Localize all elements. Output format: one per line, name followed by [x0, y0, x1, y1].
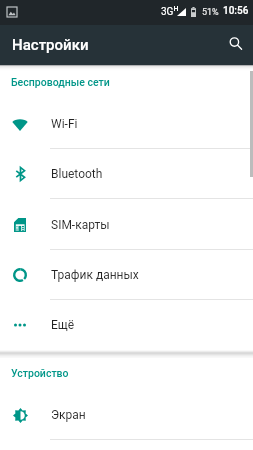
staticText: Ещё — [51, 318, 75, 332]
staticText: SIM-карты — [51, 218, 110, 232]
button[interactable]: Search — [213, 25, 253, 65]
staticText: Устройство — [11, 367, 69, 379]
staticText: Экран — [51, 408, 86, 422]
button[interactable]: Трафик данных — [0, 250, 253, 300]
staticText: 3G — [161, 6, 174, 18]
staticText: Bluetooth — [51, 167, 103, 181]
staticText: Беспроводные сети — [11, 76, 110, 88]
button[interactable]: Wi-Fi — [0, 99, 253, 149]
button[interactable]: SIM-карты — [0, 199, 253, 250]
staticText: Трафик данных — [51, 268, 139, 282]
staticText: 10:56 — [223, 5, 249, 17]
staticText: 51% — [202, 7, 219, 18]
button[interactable]: Экран — [0, 390, 253, 440]
button[interactable]: Ещё — [0, 300, 253, 350]
staticText: Настройки — [12, 36, 89, 54]
button[interactable]: Bluetooth — [0, 149, 253, 199]
staticText: Wi-Fi — [51, 117, 78, 131]
